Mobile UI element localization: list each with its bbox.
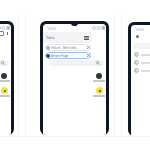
staticText: Tabs [46,35,55,40]
button[interactable]: More options [84,36,89,40]
staticText: G [135,53,138,57]
staticText: Vellum - Mercedes [51,46,77,50]
staticText: G [135,69,138,73]
button[interactable]: Amore Page [45,52,91,59]
staticText: Amore Page [51,54,69,58]
button[interactable]: Vellum - Mercedes [45,44,91,51]
staticText: G [135,61,138,65]
staticText: 10:05 [47,26,56,30]
staticText: 10:05 [135,27,144,31]
button[interactable]: Tabs [0,31,4,36]
